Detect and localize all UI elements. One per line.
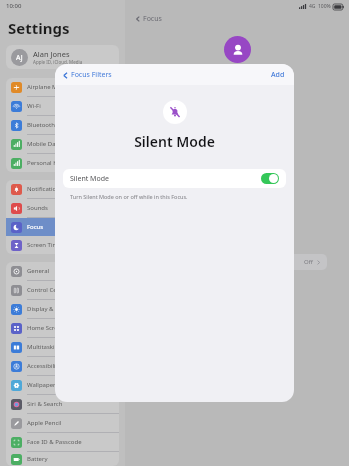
staticText: Wallpaper	[27, 381, 56, 389]
staticText: Apple ID, iCloud, Media	[33, 59, 83, 65]
staticText: Apple Pencil	[27, 419, 62, 427]
button[interactable]: Face ID & Passcode	[6, 433, 119, 451]
button[interactable]: Silent Mode	[63, 169, 286, 188]
staticText: Focus	[27, 223, 44, 231]
staticText: Face ID & Passcode	[27, 438, 82, 446]
staticText: General	[27, 267, 50, 275]
button[interactable]: Personal Hotspot	[6, 154, 119, 172]
button[interactable]: Focus Filters	[60, 68, 114, 82]
staticText: Multitasking & Gestures	[27, 343, 95, 351]
button[interactable]: Bluetooth	[6, 116, 119, 134]
staticText: Display & Brightness	[27, 305, 86, 313]
staticText: Battery	[27, 455, 48, 463]
button[interactable]: Accessibility	[6, 357, 119, 375]
button[interactable]: Siri & Search	[6, 395, 119, 413]
button[interactable]: Add	[268, 68, 288, 82]
button[interactable]: Focus	[6, 218, 119, 236]
button[interactable]: Multitasking & Gestures	[6, 338, 119, 356]
staticText: Airplane Mode	[27, 83, 69, 91]
staticText: Wi-Fi	[27, 102, 41, 110]
staticText: Off	[304, 258, 313, 266]
staticText: AJ	[16, 53, 23, 63]
staticText: Settings	[8, 18, 70, 38]
staticText: Focus Filters	[71, 70, 112, 80]
button[interactable]: AJ	[6, 45, 119, 69]
staticText: Bluetooth	[27, 121, 55, 129]
staticText: Screen Time	[27, 241, 62, 249]
button[interactable]: Notifications	[6, 180, 119, 198]
button[interactable]: General	[6, 262, 119, 280]
staticText: Personal Focus	[189, 68, 286, 86]
button[interactable]: Display & Brightness	[6, 300, 119, 318]
staticText: Silent Mode	[134, 132, 215, 151]
staticText: Notifications	[27, 185, 63, 193]
staticText: Mobile Data	[27, 140, 62, 148]
staticText: Alan Jones	[33, 49, 70, 59]
button[interactable]: Wi-Fi	[6, 97, 119, 115]
staticText: Add	[271, 70, 285, 80]
staticText: Silent Mode	[70, 174, 109, 184]
staticText: Focus	[143, 14, 162, 24]
button[interactable]: Sounds	[6, 199, 119, 217]
staticText: Personal Hotspot	[27, 159, 76, 167]
staticText: 10:00	[6, 2, 22, 10]
staticText: 100%	[318, 3, 331, 10]
button[interactable]: Focus	[133, 12, 164, 26]
button[interactable]: Control Centre	[6, 281, 119, 299]
staticText: Accessibility	[27, 362, 61, 370]
button[interactable]: Screen Time	[6, 236, 119, 254]
button[interactable]: Apple Pencil	[6, 414, 119, 432]
button[interactable]: Off	[147, 254, 327, 270]
button[interactable]: Home Screen & Dock	[6, 319, 119, 337]
staticText: Sounds	[27, 204, 48, 212]
staticText: Turn Silent Mode on or off while in this…	[70, 193, 188, 200]
staticText: Home Screen & Dock	[27, 324, 87, 332]
button[interactable]: Mobile Data	[6, 135, 119, 153]
button[interactable]: Battery	[6, 452, 119, 466]
button[interactable]: Wallpaper	[6, 376, 119, 394]
staticText: Siri & Search	[27, 400, 63, 408]
button[interactable]: Airplane Mode	[6, 78, 119, 96]
staticText: Control Centre	[27, 286, 69, 294]
staticText: 4G	[309, 3, 316, 10]
